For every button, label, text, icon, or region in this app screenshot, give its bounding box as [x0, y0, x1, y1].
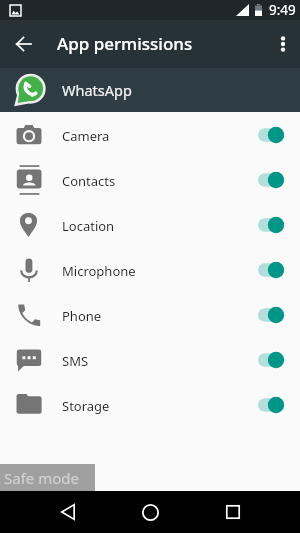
staticText: Phone	[62, 307, 102, 325]
button[interactable]: Back	[43, 491, 91, 533]
button[interactable]: Storage	[0, 382, 300, 427]
staticText: Safe mode	[4, 468, 79, 488]
staticText: Microphone	[62, 262, 136, 280]
button[interactable]: Recents	[209, 491, 257, 533]
button[interactable]: More options	[264, 20, 300, 68]
staticText: 9:49	[269, 1, 296, 19]
button[interactable]: SMS	[0, 337, 300, 382]
button[interactable]: Toggle	[251, 258, 285, 282]
button[interactable]: Contacts	[0, 157, 300, 202]
button[interactable]: Toggle	[251, 168, 285, 192]
button[interactable]: Toggle	[251, 348, 285, 372]
button[interactable]: Toggle	[251, 213, 285, 237]
button[interactable]: Location	[0, 202, 300, 247]
staticText: SMS	[62, 352, 89, 370]
button[interactable]: Toggle	[251, 123, 285, 147]
button[interactable]: Toggle	[251, 393, 285, 417]
staticText: WhatsApp	[62, 80, 132, 100]
staticText: Storage	[62, 397, 110, 415]
button[interactable]: Microphone	[0, 247, 300, 292]
button[interactable]: Phone	[0, 292, 300, 337]
button[interactable]: Toggle	[251, 303, 285, 327]
staticText: Location	[62, 217, 115, 235]
staticText: App permissions	[57, 32, 193, 55]
button[interactable]: Back	[0, 20, 46, 68]
button[interactable]: Home	[126, 491, 174, 533]
staticText: Contacts	[62, 172, 116, 190]
button[interactable]: WhatsApp	[0, 68, 300, 112]
staticText: Camera	[62, 127, 110, 145]
button[interactable]: Camera	[0, 112, 300, 157]
